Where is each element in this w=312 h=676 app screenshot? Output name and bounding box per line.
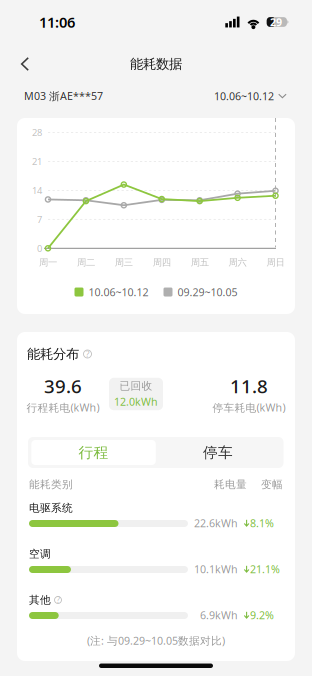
staticText: 39.6 [44,373,82,398]
staticText: 已回收 [119,379,152,392]
staticText: 29 [270,15,282,29]
staticText: 耗电量 [214,478,247,491]
staticText: 能耗分布 [27,346,79,362]
staticText: 周五 [191,257,209,268]
staticText: 周三 [115,257,133,268]
staticText: 停车耗电(kWh) [212,400,285,414]
staticText: 0 [37,242,42,254]
staticText: 能耗类别 [29,478,73,491]
button[interactable]: 行程 [31,440,156,465]
staticText: 14 [32,184,42,197]
staticText: 周六 [229,257,247,268]
staticText: 周二 [77,257,95,268]
staticText: 停车 [203,443,233,461]
staticText: 行程耗电(kWh) [26,400,99,414]
staticText: (注: 与09.29~10.05数据对比) [87,633,225,648]
staticText: 11.8 [230,373,268,398]
staticText: M03 浙AE***57 [24,89,103,103]
staticText: 能耗数据 [130,56,182,72]
staticText: 变幅 [261,478,283,491]
staticText: 09.29~10.05 [177,285,237,299]
staticText: 周四 [153,257,171,268]
staticText: 9.2% [250,608,274,622]
staticText: 行程 [78,443,108,461]
staticText: 周一 [39,257,57,268]
staticText: 10.06~10.12 [214,89,274,103]
staticText: 8.1% [250,516,274,530]
button[interactable]: Back [0,49,41,79]
staticText: 周日 [266,257,284,268]
staticText: 21 [32,155,42,168]
button[interactable]: 停车 [156,440,280,465]
staticText: ? [56,595,59,605]
staticText: 10.06~10.12 [88,285,148,299]
staticText: 7 [37,213,42,225]
staticText: ? [85,348,89,360]
button[interactable]: 10.06~10.12 [214,89,287,103]
staticText: 其他 [29,593,51,606]
staticText: 6.9kWh [200,608,238,622]
staticText: 空调 [29,547,51,560]
staticText: 28 [32,126,42,139]
staticText: 11:06 [39,12,75,32]
staticText: 12.0kWh [114,394,158,409]
staticText: 电驱系统 [29,501,73,514]
staticText: 10.1kWh [194,562,238,576]
staticText: 21.1% [250,562,280,576]
staticText: 22.6kWh [194,516,238,530]
